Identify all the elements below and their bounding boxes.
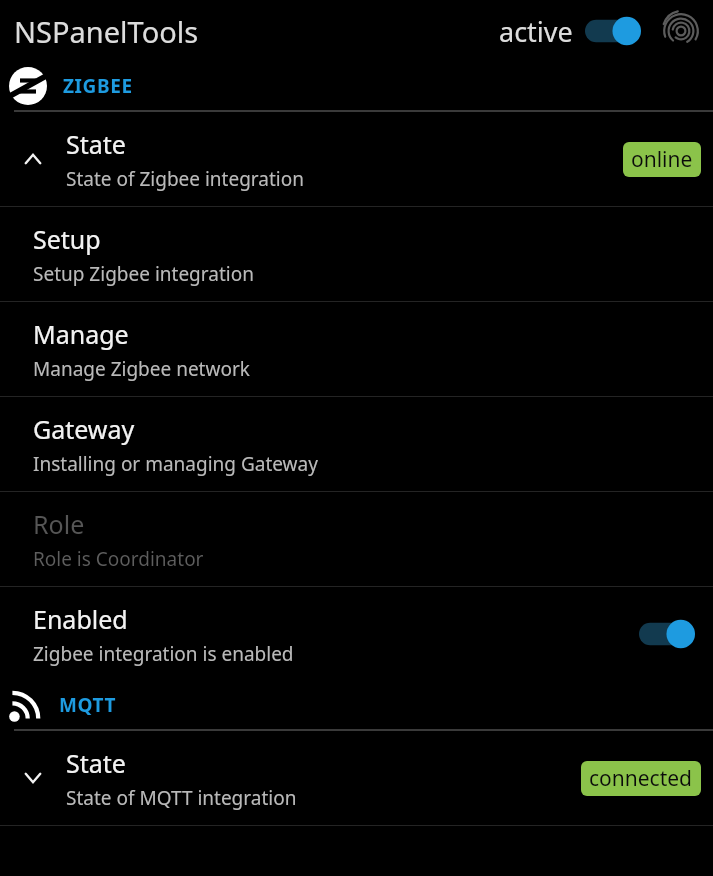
button[interactable]: online	[623, 142, 701, 177]
staticText: Role is Coordinator	[33, 546, 204, 572]
staticText: State of MQTT integration	[66, 785, 297, 811]
staticText: active	[499, 13, 573, 50]
staticText: Manage	[33, 317, 129, 351]
button[interactable]: Collapse Zigbee state	[19, 145, 47, 173]
button[interactable]: Enabled	[0, 587, 713, 681]
button[interactable]: Collapse Zigbee state	[0, 112, 713, 206]
staticText: State of Zigbee integration	[66, 166, 304, 192]
staticText: Gateway	[33, 412, 135, 446]
button[interactable]: MQTT	[0, 681, 713, 729]
button[interactable]: Role	[0, 492, 713, 586]
staticText: NSPanelTools	[14, 12, 199, 51]
staticText: Manage Zigbee network	[33, 356, 250, 382]
staticText: Setup Zigbee integration	[33, 261, 254, 287]
button[interactable]: Fingerprint authentication	[661, 11, 701, 51]
staticText: connected	[589, 764, 693, 793]
button[interactable]: Expand MQTT state	[19, 764, 47, 792]
staticText: State	[66, 746, 126, 780]
button[interactable]: Toggle active	[585, 14, 647, 48]
staticText: Installing or managing Gateway	[33, 451, 318, 477]
staticText: Setup	[33, 222, 101, 256]
staticText: Zigbee integration is enabled	[33, 641, 294, 667]
staticText: ZIGBEE	[63, 73, 133, 99]
staticText: Enabled	[33, 602, 128, 636]
button[interactable]: Manage	[0, 302, 713, 396]
staticText: State	[66, 127, 126, 161]
staticText: online	[631, 145, 693, 174]
button[interactable]: Expand MQTT state	[0, 731, 713, 825]
staticText: MQTT	[59, 692, 117, 718]
button[interactable]: connected	[581, 761, 701, 796]
button[interactable]: Gateway	[0, 397, 713, 491]
button[interactable]: Toggle Zigbee enabled	[639, 617, 701, 651]
staticText: Role	[33, 507, 85, 541]
button[interactable]: Setup	[0, 207, 713, 301]
button[interactable]: ZIGBEE	[0, 62, 713, 110]
